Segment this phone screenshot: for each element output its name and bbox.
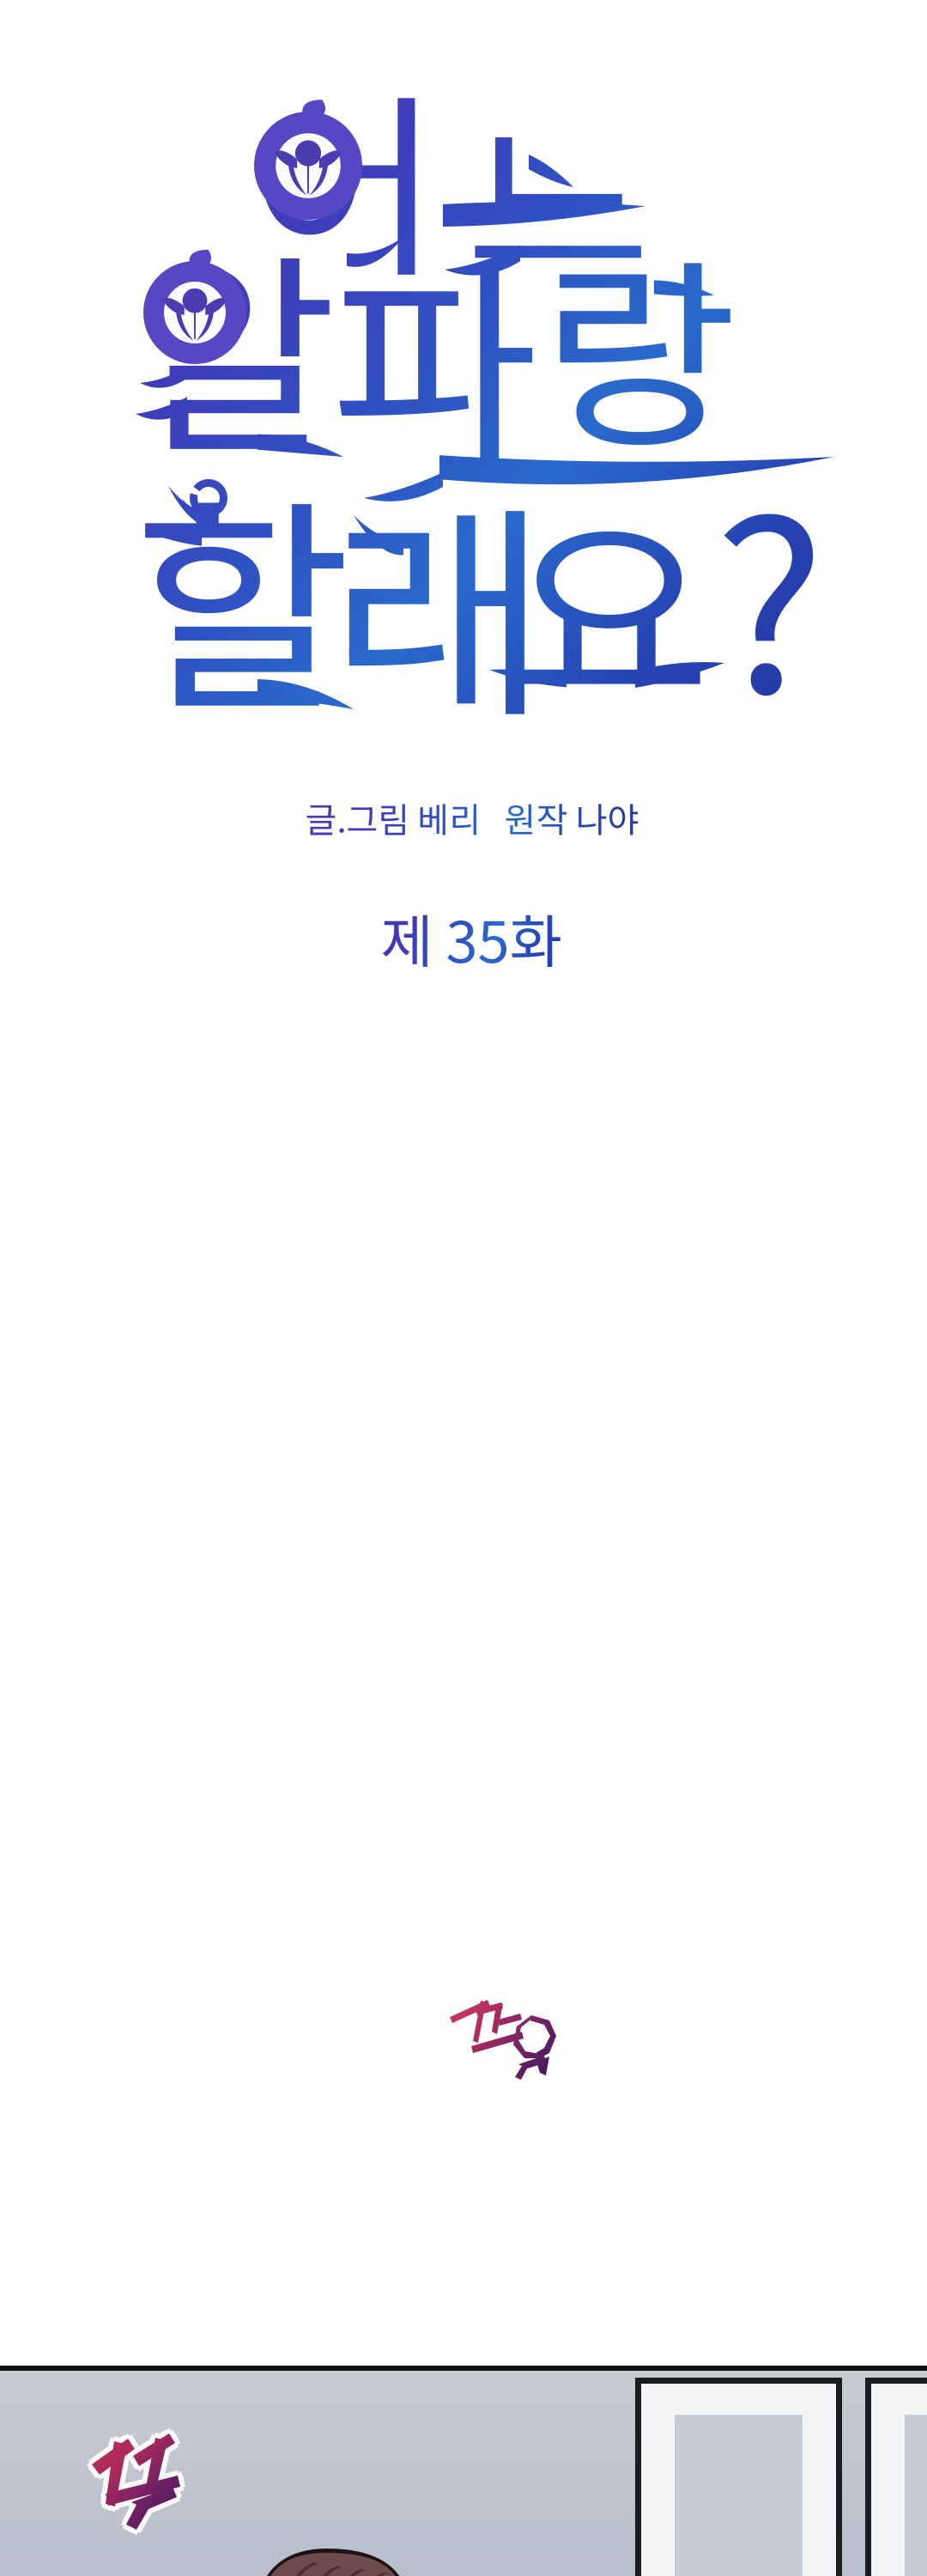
button[interactable]: 어느 알파랑 할래요? 제 35화 xyxy=(0,0,927,2576)
